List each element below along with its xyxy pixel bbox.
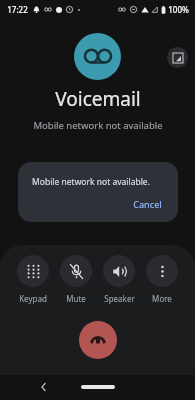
- staticText: Cancel: [133, 198, 162, 210]
- staticText: Speaker: [104, 293, 135, 304]
- staticText: Mute: [66, 293, 86, 304]
- staticText: Mobile network not available.: [32, 176, 150, 188]
- button[interactable]: Picture in picture: [167, 47, 188, 68]
- button[interactable]: More: [144, 253, 180, 306]
- button[interactable]: Mute: [58, 253, 94, 306]
- staticText: More: [152, 293, 172, 304]
- button[interactable]: Keypad: [15, 253, 51, 306]
- staticText: Mobile network not available: [33, 119, 163, 132]
- button[interactable]: Cancel: [129, 196, 166, 212]
- staticText: 17:22: [7, 4, 28, 15]
- button[interactable]: Back: [36, 379, 52, 395]
- button[interactable]: End call: [79, 321, 117, 359]
- staticText: 100%: [168, 4, 189, 15]
- staticText: Voicemail: [55, 86, 141, 112]
- button[interactable]: Speaker: [101, 253, 137, 306]
- staticText: Keypad: [19, 293, 47, 304]
